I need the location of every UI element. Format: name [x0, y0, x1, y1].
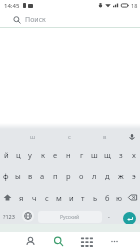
button[interactable]: Backspace: [125, 187, 140, 208]
staticText: Русский: [60, 214, 80, 221]
button[interactable]: .: [102, 208, 115, 224]
button[interactable]: в: [87, 129, 123, 144]
button[interactable]: й: [0, 144, 12, 165]
button[interactable]: ь: [89, 187, 101, 208]
button[interactable]: а: [36, 165, 49, 187]
button[interactable]: с: [41, 187, 53, 208]
button[interactable]: Поиск: [0, 13, 140, 27]
staticText: ш: [30, 133, 36, 141]
staticText: й: [4, 150, 9, 160]
button[interactable]: ц: [12, 144, 24, 165]
button[interactable]: к: [36, 144, 49, 165]
staticText: н: [66, 150, 71, 160]
staticText: х: [132, 150, 136, 160]
staticText: в: [103, 133, 107, 141]
button[interactable]: ю: [113, 187, 125, 208]
button[interactable]: ж: [114, 165, 127, 187]
staticText: ц: [16, 150, 21, 160]
button[interactable]: д: [101, 165, 114, 187]
button[interactable]: в: [24, 165, 36, 187]
staticText: к: [41, 150, 45, 160]
staticText: о: [79, 171, 84, 181]
button[interactable]: з: [114, 144, 127, 165]
button[interactable]: ы: [12, 165, 24, 187]
staticText: ф: [3, 171, 9, 181]
staticText: ю: [116, 193, 122, 203]
staticText: ш: [91, 150, 98, 160]
staticText: а: [40, 171, 45, 181]
button[interactable]: п: [49, 165, 62, 187]
staticText: с: [45, 193, 49, 203]
button[interactable]: т: [77, 187, 89, 208]
staticText: в: [28, 171, 33, 181]
button[interactable]: Profile: [16, 232, 44, 250]
staticText: и: [69, 193, 74, 203]
button[interactable]: ?123: [0, 208, 17, 224]
staticText: м: [56, 193, 62, 203]
staticText: ж: [118, 171, 124, 181]
button[interactable]: Change keyboard language: [17, 208, 38, 224]
button[interactable]: ч: [28, 187, 41, 208]
button[interactable]: ш: [14, 129, 51, 144]
staticText: б: [105, 193, 110, 203]
staticText: я: [19, 193, 24, 203]
button[interactable]: Shift: [0, 187, 15, 208]
staticText: р: [66, 171, 71, 181]
staticText: г: [80, 150, 84, 160]
button[interactable]: щ: [101, 144, 114, 165]
staticText: е: [53, 150, 58, 160]
button[interactable]: Русский: [38, 211, 102, 223]
staticText: ?123: [3, 213, 15, 220]
staticText: ы: [15, 171, 21, 181]
staticText: 18: [131, 2, 138, 9]
button[interactable]: о: [75, 165, 88, 187]
button[interactable]: и: [65, 187, 77, 208]
staticText: л: [92, 171, 97, 181]
button[interactable]: э: [127, 165, 140, 187]
staticText: п: [53, 171, 58, 181]
staticText: д: [105, 171, 110, 181]
button[interactable]: х: [127, 144, 140, 165]
button[interactable]: ш: [88, 144, 101, 165]
button[interactable]: Enter: [115, 208, 140, 224]
staticText: щ: [104, 150, 111, 160]
button[interactable]: ф: [0, 165, 12, 187]
staticText: ч: [32, 193, 37, 203]
button[interactable]: е: [49, 144, 62, 165]
button[interactable]: г: [75, 144, 88, 165]
button[interactable]: у: [24, 144, 36, 165]
button[interactable]: Search: [44, 232, 72, 250]
button[interactable]: Voice input: [123, 129, 140, 144]
staticText: Поиск: [25, 15, 46, 25]
staticText: ь: [93, 193, 98, 203]
button[interactable]: л: [88, 165, 101, 187]
staticText: 14:45: [4, 2, 20, 10]
button[interactable]: я: [15, 187, 28, 208]
staticText: т: [81, 193, 85, 203]
button[interactable]: м: [53, 187, 65, 208]
button[interactable]: More: [100, 232, 128, 250]
button[interactable]: Catalog: [72, 232, 100, 250]
staticText: с: [68, 133, 71, 141]
button[interactable]: с: [51, 129, 87, 144]
staticText: .: [108, 211, 110, 221]
button[interactable]: н: [62, 144, 75, 165]
button[interactable]: р: [62, 165, 75, 187]
staticText: з: [119, 150, 123, 160]
button[interactable]: б: [101, 187, 113, 208]
staticText: э: [132, 171, 136, 181]
staticText: у: [28, 150, 32, 160]
